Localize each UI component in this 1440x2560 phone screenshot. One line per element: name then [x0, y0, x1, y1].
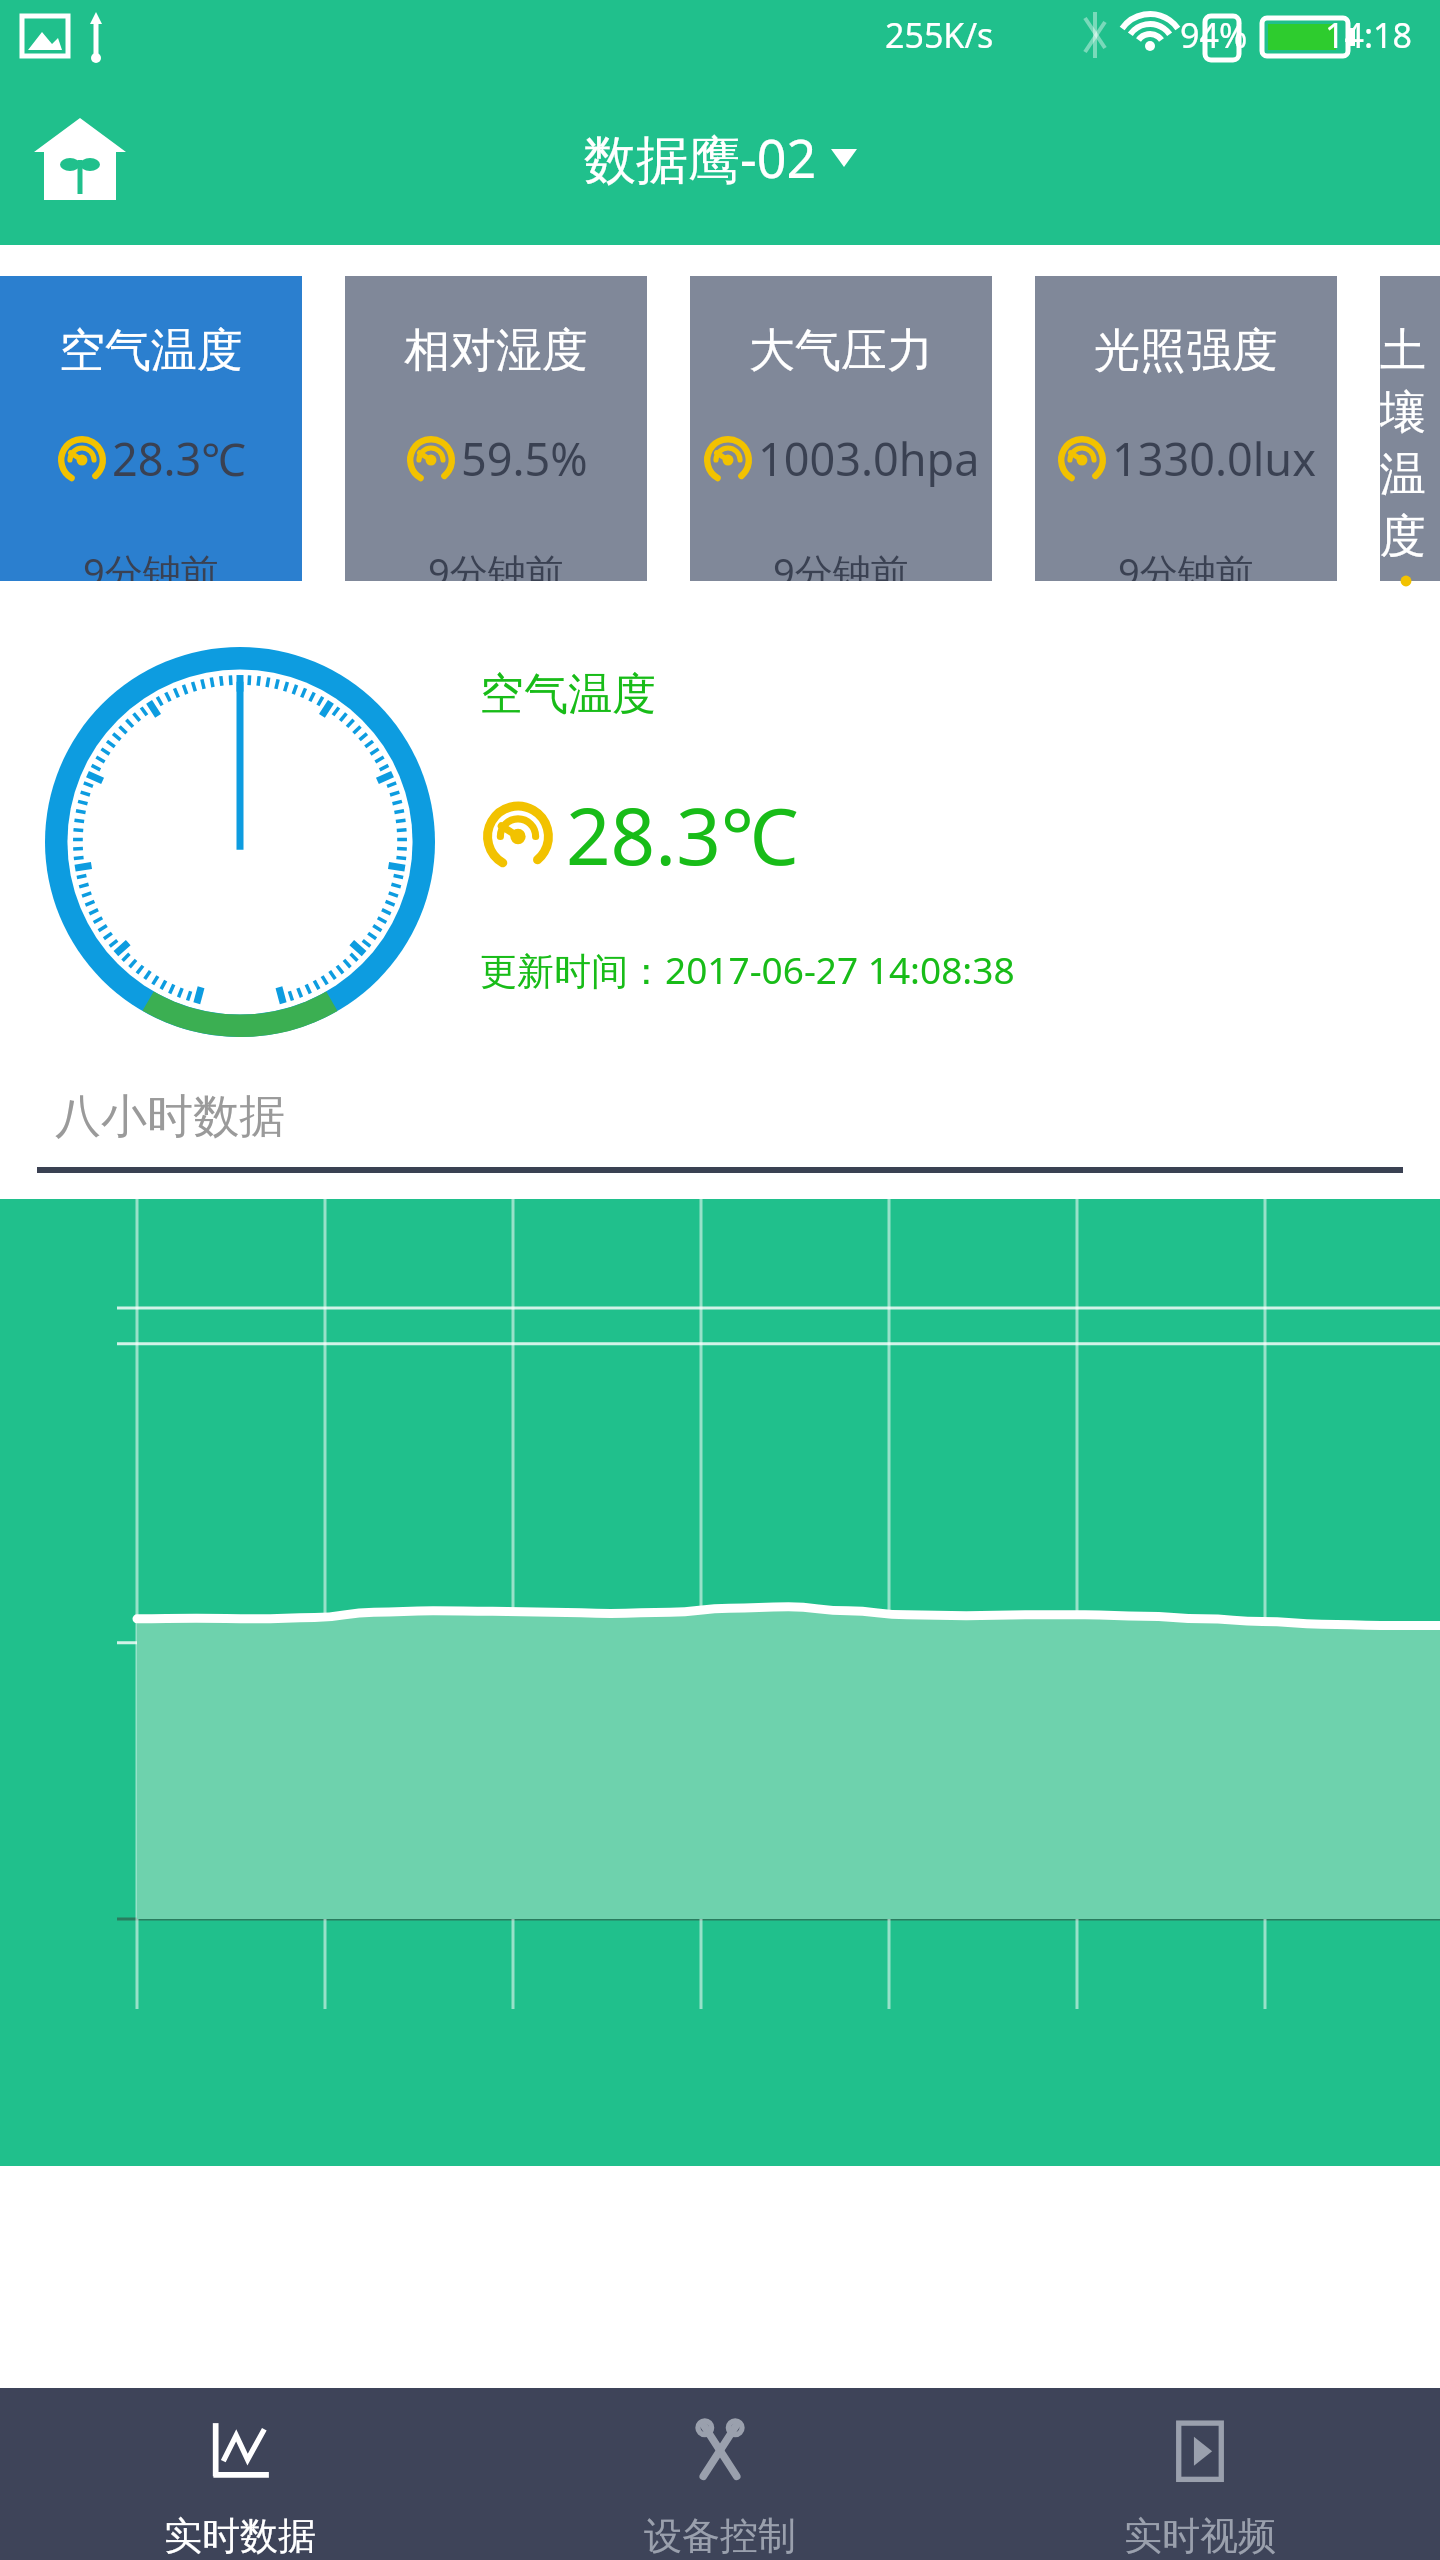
staticText: 八小时数据	[55, 1088, 285, 1146]
staticText: 空气温度	[59, 322, 243, 380]
staticText: 土壤温度	[1380, 322, 1440, 566]
button[interactable]: 数据鹰-02	[584, 122, 857, 193]
button[interactable]: 实时数据	[0, 2388, 480, 2560]
staticText: 9分钟前	[773, 545, 909, 581]
button[interactable]: 设备控制	[480, 2388, 960, 2560]
staticText: 9分钟前	[428, 545, 564, 581]
staticText: 空气温度	[480, 667, 656, 722]
button[interactable]: 大气压力	[690, 276, 992, 581]
staticText: 大气压力	[749, 322, 933, 380]
button[interactable]: 空气温度	[0, 276, 302, 581]
staticText: 9分钟前	[1118, 545, 1254, 581]
button[interactable]: 实时视频	[960, 2388, 1440, 2560]
staticText: 1003.0hpa	[758, 428, 980, 489]
staticText: 实时数据	[164, 2512, 316, 2560]
staticText: 光照强度	[1094, 322, 1278, 380]
staticText: 255K/s	[885, 12, 994, 58]
staticText: 28.3℃	[112, 428, 247, 489]
staticText: 14:18	[1325, 12, 1412, 58]
button[interactable]: 光照强度	[1035, 276, 1337, 581]
staticText: 94%	[1180, 12, 1248, 58]
button[interactable]: Home	[30, 108, 130, 208]
staticText: 设备控制	[644, 2512, 796, 2560]
staticText: 1330.0lux	[1112, 428, 1316, 489]
staticText: 9分钟前	[83, 545, 219, 581]
staticText: 59.5%	[461, 428, 588, 489]
staticText: 相对湿度	[404, 322, 588, 380]
button[interactable]: 相对湿度	[345, 276, 647, 581]
staticText: 更新时间：2017-06-27 14:08:38	[480, 944, 1015, 995]
staticText: 数据鹰-02	[584, 122, 817, 193]
staticText: 28.3℃	[566, 782, 799, 888]
button[interactable]: 土壤温度	[1380, 276, 1440, 581]
staticText: 实时视频	[1124, 2512, 1276, 2560]
